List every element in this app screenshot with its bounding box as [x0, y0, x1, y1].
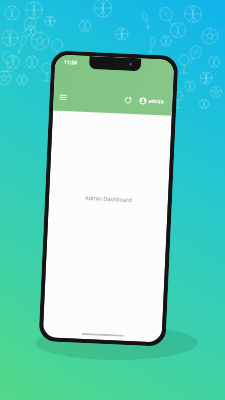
button[interactable]: admin — [137, 95, 167, 107]
staticText: admin — [148, 98, 165, 105]
staticText: Admin Dashboard — [85, 194, 132, 203]
staticText: 11:24 — [64, 59, 77, 66]
button[interactable]: Refresh — [120, 92, 136, 108]
button[interactable]: Open navigation menu — [53, 87, 72, 106]
